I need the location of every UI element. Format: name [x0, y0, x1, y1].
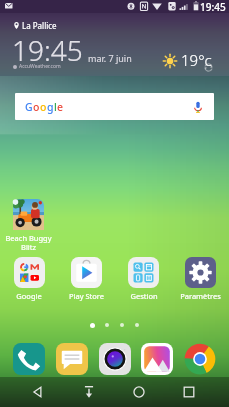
- staticText: Google: [16, 291, 42, 301]
- staticText: AccuWeather.com: [19, 63, 61, 70]
- staticText: e: [57, 100, 64, 114]
- staticText: Gestion: [130, 291, 158, 301]
- button[interactable]: Phone: [13, 343, 45, 375]
- button[interactable]: Google: [0, 257, 58, 301]
- button[interactable]: Back: [26, 380, 50, 404]
- button[interactable]: G: [15, 93, 214, 120]
- button[interactable]: Gestion: [115, 257, 172, 301]
- staticText: o: [40, 100, 47, 114]
- button[interactable]: Paramètres: [172, 257, 229, 301]
- staticText: o: [33, 100, 40, 114]
- button[interactable]: Camera: [99, 343, 131, 375]
- button[interactable]: Chrome: [184, 343, 216, 375]
- button[interactable]: Beach Buggy Blitz: [0, 199, 57, 252]
- button[interactable]: Home: [127, 380, 151, 404]
- staticText: Play Store: [69, 291, 104, 301]
- other: Voice search: [191, 100, 205, 114]
- button[interactable]: Hide keyboard: [77, 380, 101, 404]
- button[interactable]: Photos: [141, 343, 173, 375]
- other: Refresh: [203, 62, 214, 73]
- staticText: 19:45: [200, 0, 226, 13]
- staticText: 19°c: [181, 50, 212, 70]
- staticText: l: [54, 100, 57, 114]
- button[interactable]: Messages: [56, 343, 88, 375]
- button[interactable]: Recents: [177, 380, 201, 404]
- staticText: Beach Buggy Blitz: [5, 233, 52, 252]
- staticText: Paramètres: [180, 291, 221, 301]
- staticText: G: [25, 100, 33, 114]
- button[interactable]: La Pallice: [0, 13, 229, 76]
- staticText: mar. 7 juin: [88, 52, 132, 64]
- button[interactable]: Play Store: [58, 257, 115, 301]
- staticText: 19:45: [12, 31, 83, 69]
- staticText: La Pallice: [22, 20, 57, 31]
- staticText: g: [47, 100, 54, 114]
